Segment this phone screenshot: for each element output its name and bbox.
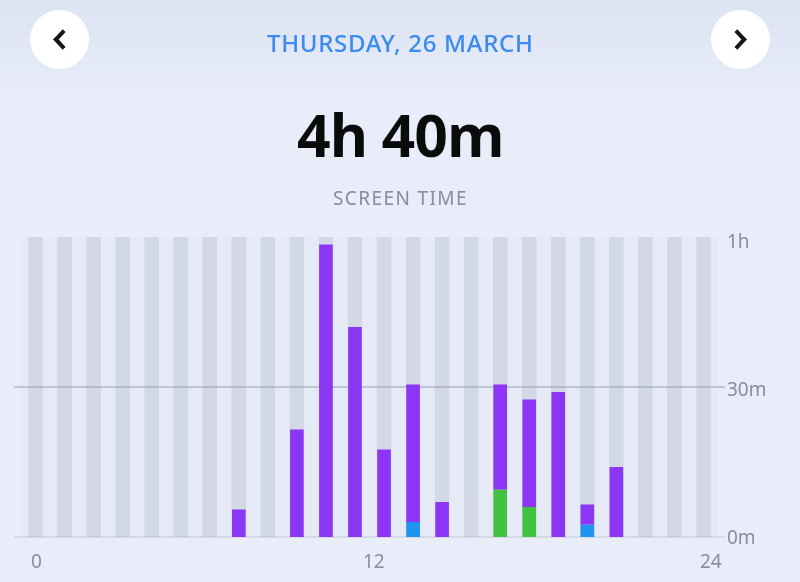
staticText: 30m	[727, 376, 767, 402]
button[interactable]: THURSDAY, 26 MARCH	[267, 26, 534, 59]
staticText: 0m	[727, 524, 756, 550]
staticText: 1h	[727, 228, 750, 254]
staticText: 4h 40m	[297, 94, 504, 174]
button[interactable]: Next day	[711, 10, 770, 69]
staticText: 12	[363, 548, 385, 574]
staticText: 0	[31, 548, 42, 574]
staticText: THURSDAY, 26 MARCH	[267, 26, 534, 59]
button[interactable]: Previous day	[30, 10, 89, 69]
staticText: 24	[700, 548, 722, 574]
staticText: SCREEN TIME	[333, 185, 468, 211]
